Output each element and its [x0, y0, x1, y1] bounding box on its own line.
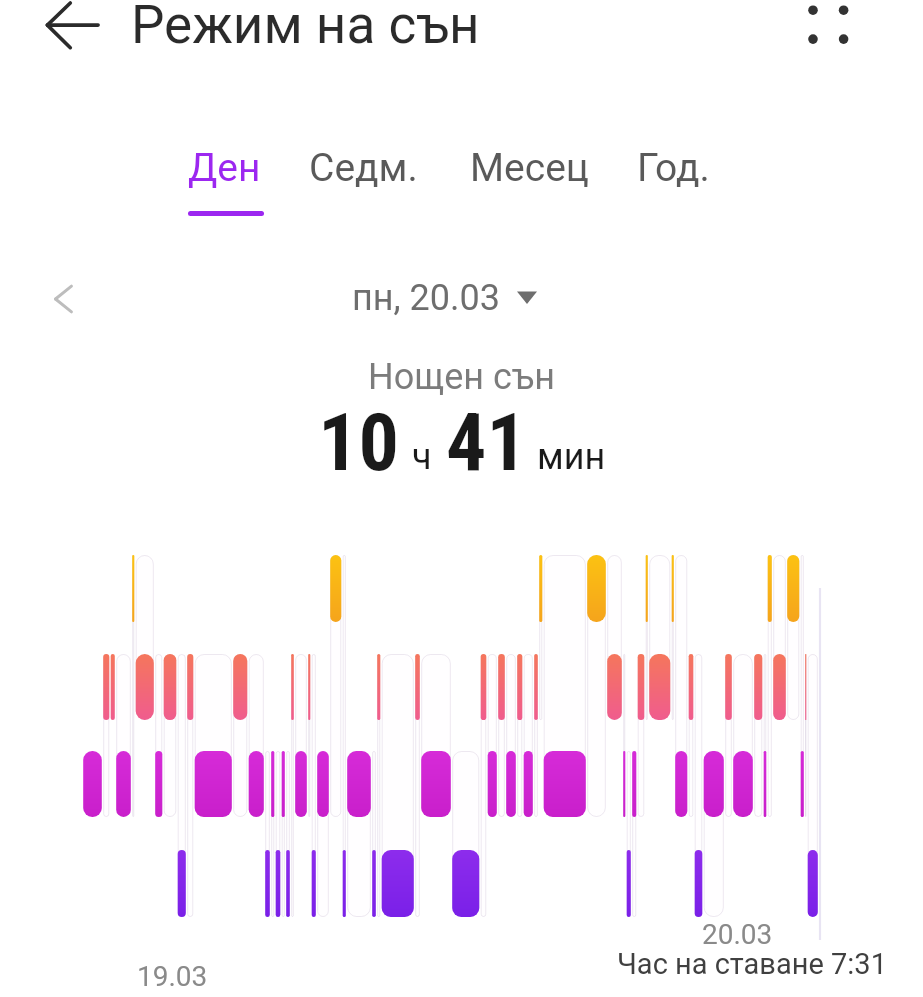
staticText: 10 [318, 396, 399, 490]
staticText: Режим на сън [131, 0, 480, 56]
staticText: 41 [446, 396, 527, 490]
button[interactable]: пн, 20.03 [352, 277, 537, 319]
staticText: 19.03 [137, 960, 208, 993]
button[interactable]: Седм. [309, 145, 418, 191]
staticText: пн, 20.03 [352, 277, 500, 319]
button[interactable]: More options [793, 0, 863, 60]
staticText: мин [537, 436, 606, 478]
button[interactable]: Месец [470, 145, 589, 191]
staticText: ч [412, 436, 432, 478]
button[interactable]: Ден [188, 145, 261, 191]
staticText: Нощен сън [0, 356, 923, 398]
button[interactable]: Back [31, 0, 95, 61]
button[interactable]: Previous day [38, 273, 90, 325]
staticText: Час на ставане 7:31 [617, 947, 887, 981]
staticText: 20.03 [702, 918, 773, 951]
button[interactable]: Год. [637, 145, 710, 191]
